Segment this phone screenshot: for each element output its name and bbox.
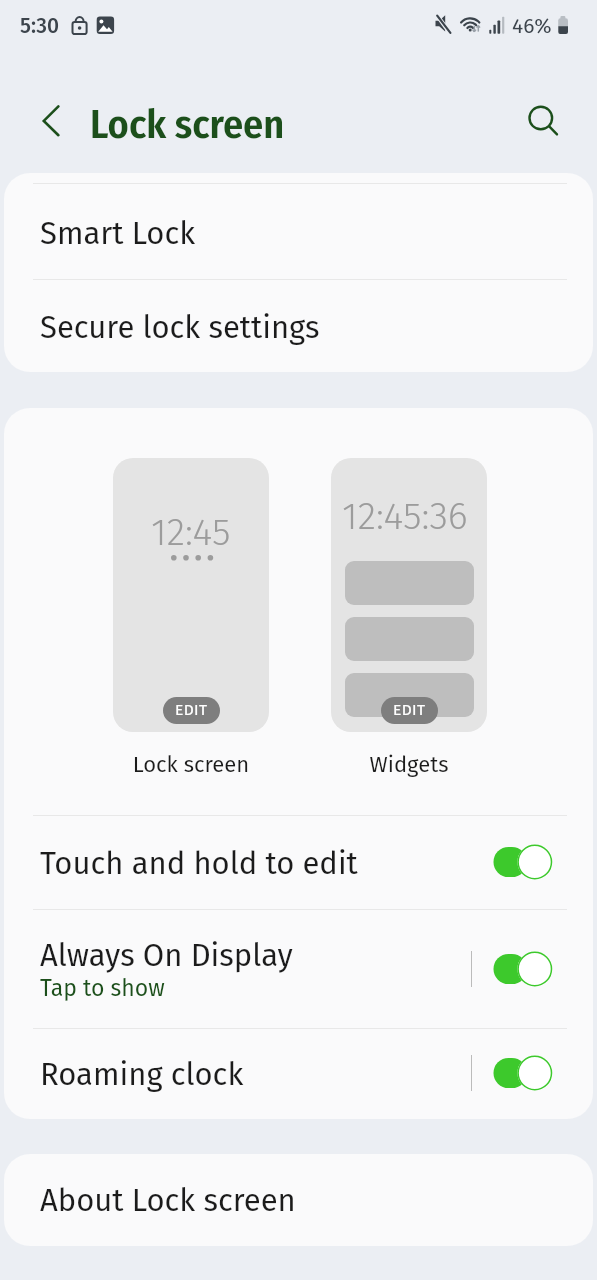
staticText: About Lock screen bbox=[40, 1182, 296, 1219]
staticText: Touch and hold to edit bbox=[40, 845, 358, 882]
button[interactable]: EDIT bbox=[163, 697, 220, 724]
button[interactable]: Touch and hold to edit bbox=[4, 815, 593, 909]
button[interactable]: Secure lock settings bbox=[4, 279, 593, 372]
button[interactable]: Smart Lock bbox=[4, 184, 593, 279]
button[interactable]: Toggle setting bbox=[492, 947, 554, 991]
staticText: EDIT bbox=[175, 701, 208, 720]
button[interactable]: Toggle setting bbox=[492, 840, 554, 884]
staticText: Smart Lock bbox=[40, 215, 196, 252]
button[interactable]: Search bbox=[518, 95, 564, 141]
staticText: Tap to show bbox=[40, 974, 165, 1002]
staticText: 12:45 bbox=[151, 509, 231, 555]
staticText: 5:30 bbox=[20, 13, 59, 38]
button[interactable]: Roaming clock bbox=[4, 1028, 593, 1118]
button[interactable]: About Lock screen bbox=[4, 1154, 593, 1246]
staticText: Roaming clock bbox=[40, 1056, 244, 1093]
button[interactable]: EDIT bbox=[381, 697, 438, 724]
staticText: 12:45:36 bbox=[342, 493, 468, 539]
staticText: Widgets bbox=[331, 751, 487, 777]
button[interactable]: Toggle setting bbox=[492, 1051, 554, 1095]
staticText: Lock screen bbox=[90, 101, 285, 149]
button[interactable]: 12:45:36 bbox=[331, 458, 487, 732]
staticText: Secure lock settings bbox=[40, 309, 320, 346]
button[interactable]: Always On Display bbox=[4, 909, 593, 1028]
staticText: Lock screen bbox=[113, 751, 269, 777]
button[interactable]: 12:45 bbox=[113, 458, 269, 732]
staticText: Always On Display bbox=[40, 937, 293, 974]
staticText: 46% bbox=[512, 13, 552, 38]
button[interactable]: Navigate up bbox=[28, 97, 74, 143]
staticText: EDIT bbox=[393, 701, 426, 720]
